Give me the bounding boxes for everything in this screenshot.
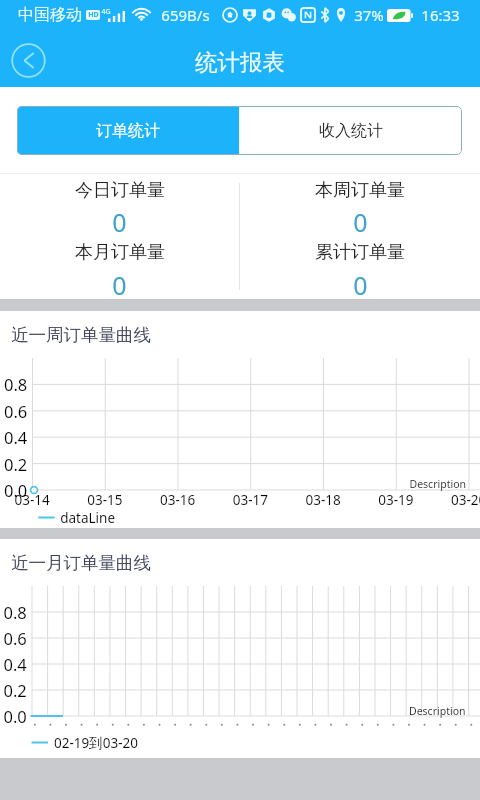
button[interactable]: 今日订单量 xyxy=(0,174,239,236)
staticText: 本周订单量 xyxy=(315,179,405,202)
staticText: 订单统计 xyxy=(96,121,160,141)
staticText: 中国移动 xyxy=(18,5,82,25)
staticText: 本月订单量 xyxy=(75,241,165,264)
staticText: 累计订单量 xyxy=(315,241,405,264)
button[interactable]: 订单统计 xyxy=(17,106,239,155)
staticText: 近一月订单量曲线 xyxy=(11,552,151,574)
staticText: 今日订单量 xyxy=(75,179,165,202)
staticText: 近一周订单量曲线 xyxy=(11,324,151,346)
button[interactable]: 累计订单量 xyxy=(240,236,480,299)
button[interactable]: 本周订单量 xyxy=(240,174,480,236)
staticText: 37% xyxy=(354,5,384,25)
staticText: 0 xyxy=(112,205,127,239)
staticText: HD xyxy=(88,10,99,20)
staticText: 统计报表 xyxy=(195,48,285,76)
button[interactable]: 本月订单量 xyxy=(0,236,239,299)
staticText: 4G xyxy=(101,7,111,17)
staticText: 659B/s xyxy=(161,5,210,25)
button[interactable]: Back xyxy=(11,43,46,78)
staticText: 收入统计 xyxy=(319,121,383,141)
staticText: 0 xyxy=(353,268,368,302)
staticText: 0 xyxy=(112,268,127,302)
staticText: 0 xyxy=(353,205,368,239)
button[interactable]: 收入统计 xyxy=(239,106,462,155)
staticText: 16:33 xyxy=(421,5,460,25)
